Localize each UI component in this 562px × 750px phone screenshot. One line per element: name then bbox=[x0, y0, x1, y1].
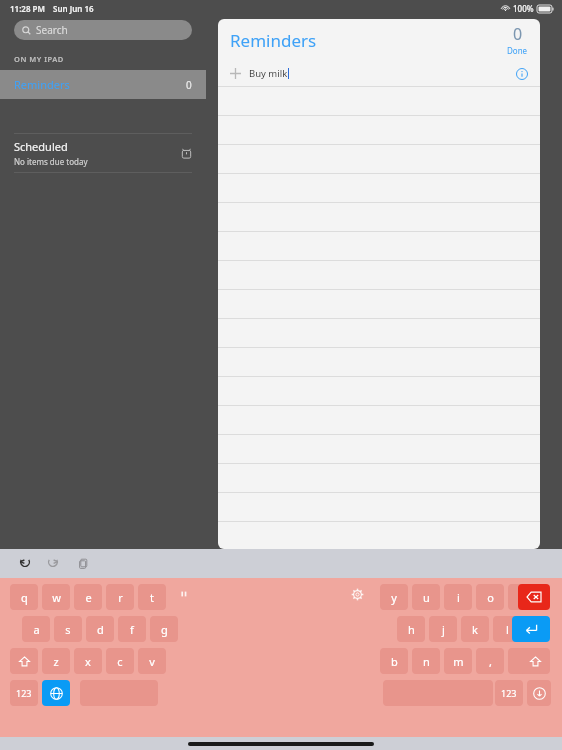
button[interactable]: Paste bbox=[74, 554, 94, 574]
staticText: Reminders bbox=[14, 77, 70, 92]
button[interactable]: Buy milk bbox=[218, 61, 540, 86]
button[interactable]: a bbox=[22, 616, 50, 642]
button[interactable]: m bbox=[444, 648, 472, 674]
button[interactable]: l bbox=[493, 616, 521, 642]
staticText: Scheduled bbox=[14, 139, 68, 154]
staticText: w bbox=[52, 590, 61, 605]
staticText: Reminders bbox=[230, 29, 317, 52]
button[interactable]: e bbox=[74, 584, 102, 610]
button[interactable]: n bbox=[412, 648, 440, 674]
button[interactable]: o bbox=[476, 584, 504, 610]
button[interactable]: z bbox=[42, 648, 70, 674]
button[interactable]: w bbox=[42, 584, 70, 610]
staticText: q bbox=[21, 590, 28, 605]
staticText: k bbox=[472, 622, 478, 637]
staticText: ON MY IPAD bbox=[14, 54, 64, 64]
staticText: i bbox=[457, 590, 460, 605]
button[interactable]: . bbox=[508, 648, 536, 674]
button[interactable]: f bbox=[118, 616, 146, 642]
button[interactable]: , bbox=[476, 648, 504, 674]
staticText: t bbox=[150, 590, 154, 605]
button[interactable]: v bbox=[138, 648, 166, 674]
staticText: n bbox=[423, 654, 430, 669]
button[interactable]: Scheduled bbox=[0, 134, 206, 172]
staticText: s bbox=[65, 622, 71, 637]
button[interactable]: Hide keyboard bbox=[527, 680, 551, 706]
staticText: v bbox=[149, 654, 155, 669]
button[interactable]: g bbox=[150, 616, 178, 642]
staticText: l bbox=[506, 622, 509, 637]
staticText: Search bbox=[36, 23, 68, 37]
button[interactable]: p bbox=[508, 584, 536, 610]
staticText: y bbox=[391, 590, 397, 605]
button[interactable]: Redo bbox=[44, 554, 64, 574]
staticText: j bbox=[442, 622, 445, 637]
staticText: 100% bbox=[513, 3, 534, 14]
staticText: f bbox=[130, 622, 134, 637]
button[interactable]: Search bbox=[14, 20, 192, 40]
button[interactable]: Shift bbox=[520, 648, 550, 674]
button[interactable]: u bbox=[412, 584, 440, 610]
button[interactable]: Shift bbox=[10, 648, 38, 674]
button[interactable]: j bbox=[429, 616, 457, 642]
staticText: r bbox=[118, 590, 123, 605]
button[interactable]: 123 bbox=[10, 680, 38, 706]
button[interactable]: Switch keyboard bbox=[42, 680, 70, 706]
button[interactable]: b bbox=[380, 648, 408, 674]
button[interactable]: q bbox=[10, 584, 38, 610]
button[interactable] bbox=[218, 522, 540, 549]
button[interactable]: y bbox=[380, 584, 408, 610]
button[interactable]: Reminders bbox=[0, 70, 206, 99]
staticText: 123 bbox=[16, 687, 32, 699]
button[interactable]: r bbox=[106, 584, 134, 610]
staticText: u bbox=[423, 590, 430, 605]
staticText: e bbox=[85, 590, 92, 605]
button[interactable]: i bbox=[444, 584, 472, 610]
button[interactable]: 123 bbox=[495, 680, 523, 706]
button[interactable]: Split keyboard bbox=[178, 588, 190, 600]
staticText: g bbox=[161, 622, 168, 637]
button[interactable]: Keyboard settings bbox=[351, 588, 364, 601]
button[interactable]: Details bbox=[516, 68, 528, 80]
staticText: Buy milk bbox=[249, 67, 288, 80]
button[interactable]: t bbox=[138, 584, 166, 610]
button[interactable]: d bbox=[86, 616, 114, 642]
button[interactable]: s bbox=[54, 616, 82, 642]
staticText: d bbox=[97, 622, 104, 637]
button[interactable]: 0 bbox=[507, 23, 528, 56]
button[interactable]: Undo bbox=[14, 554, 34, 574]
staticText: b bbox=[391, 654, 398, 669]
button[interactable]: c bbox=[106, 648, 134, 674]
staticText: 11:28 PM bbox=[10, 3, 45, 14]
button[interactable]: h bbox=[397, 616, 425, 642]
staticText: o bbox=[487, 590, 494, 605]
button[interactable]: x bbox=[74, 648, 102, 674]
staticText: x bbox=[85, 654, 91, 669]
button[interactable]: Return bbox=[512, 616, 550, 642]
button[interactable]: k bbox=[461, 616, 489, 642]
staticText: 0 bbox=[186, 78, 192, 92]
staticText: m bbox=[453, 654, 464, 669]
staticText: h bbox=[408, 622, 415, 637]
staticText: No items due today bbox=[14, 156, 88, 167]
staticText: a bbox=[33, 622, 40, 637]
button[interactable]: Delete bbox=[518, 584, 550, 610]
